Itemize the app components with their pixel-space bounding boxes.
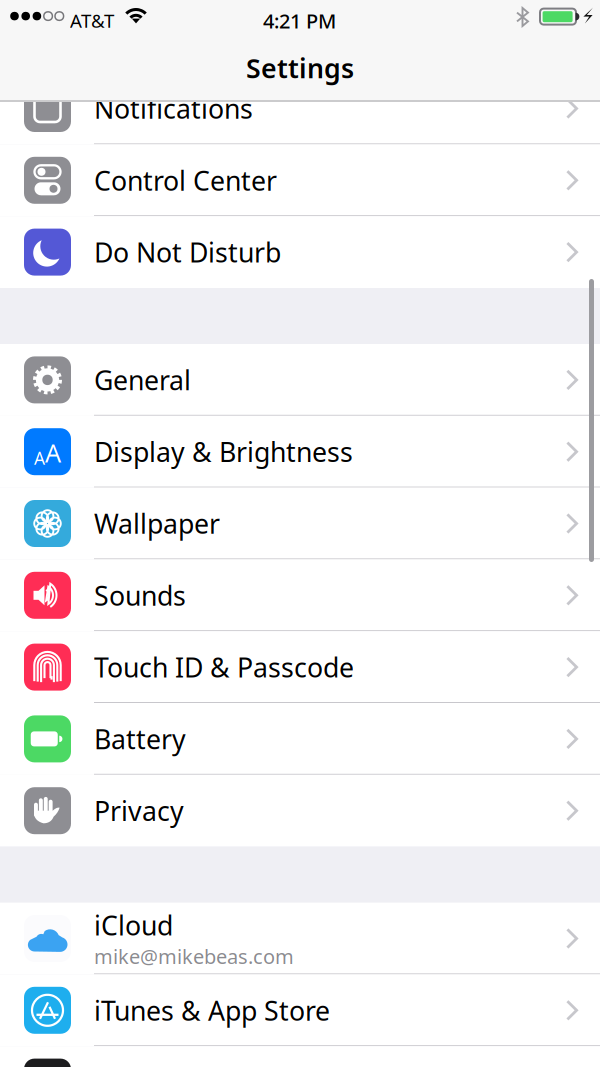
- staticText: Privacy: [94, 793, 184, 828]
- staticText: Display & Brightness: [94, 434, 353, 469]
- button[interactable]: Touch ID & Passcode: [0, 631, 600, 703]
- staticText: Sounds: [94, 578, 186, 613]
- staticText: Settings: [246, 50, 354, 86]
- button[interactable]: iCloud: [0, 903, 600, 974]
- staticText: Do Not Disturb: [94, 234, 281, 270]
- button[interactable]: General: [0, 344, 600, 416]
- button[interactable]: Wallpaper: [0, 488, 600, 559]
- staticText: Control Center: [94, 163, 277, 198]
- staticText: 4:21 PM: [263, 7, 336, 34]
- button[interactable]: Do Not Disturb: [0, 216, 600, 288]
- button[interactable]: iTunes & App Store: [0, 974, 600, 1046]
- button[interactable]: Wallet: [0, 1046, 600, 1067]
- staticText: iTunes & App Store: [94, 993, 330, 1028]
- button[interactable]: Sounds: [0, 559, 600, 631]
- button[interactable]: Battery: [0, 703, 600, 775]
- staticText: Battery: [94, 721, 186, 757]
- button[interactable]: Privacy: [0, 775, 600, 847]
- staticText: General: [94, 362, 191, 398]
- staticText: A: [45, 436, 61, 469]
- staticText: Wallpaper: [94, 506, 220, 541]
- staticText: AT&T: [70, 8, 114, 33]
- staticText: Notifications: [94, 91, 253, 126]
- button[interactable]: Control Center: [0, 144, 600, 216]
- staticText: iCloud: [94, 907, 173, 943]
- staticText: mike@mikebeas.com: [94, 943, 294, 969]
- button[interactable]: A: [0, 416, 600, 488]
- staticText: Touch ID & Passcode: [94, 649, 354, 685]
- staticText: A: [34, 446, 45, 469]
- button[interactable]: Notifications: [0, 73, 600, 144]
